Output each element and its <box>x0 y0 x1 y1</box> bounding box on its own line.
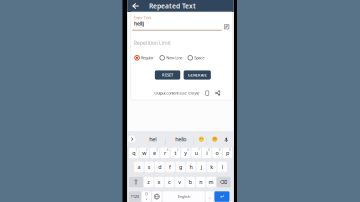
button[interactable]: . <box>206 191 214 202</box>
button[interactable]: o <box>212 148 222 158</box>
button[interactable]: Comma <box>142 191 151 202</box>
staticText: 5 <box>177 148 179 152</box>
staticText: 9 <box>219 148 221 152</box>
button[interactable]: ?123 <box>129 191 141 202</box>
button[interactable]: GENERATE <box>184 70 211 80</box>
button[interactable]: Emoji suggestion <box>197 131 206 147</box>
button[interactable]: ⌫ <box>217 177 231 187</box>
staticText: 7 <box>198 148 200 152</box>
staticText: hel <box>149 136 156 143</box>
button[interactable]: hel <box>142 131 164 147</box>
staticText: m <box>209 178 214 186</box>
staticText: j <box>201 163 202 170</box>
button[interactable]: Paste <box>224 24 229 29</box>
staticText: x <box>157 178 160 186</box>
staticText: ⌫ <box>220 179 228 185</box>
staticText: RESET <box>162 72 173 78</box>
staticText: ?123 <box>131 194 139 199</box>
staticText: r <box>164 149 166 156</box>
staticText: 0 <box>229 148 231 152</box>
button[interactable]: e <box>150 148 159 158</box>
button[interactable]: Regular <box>134 54 154 61</box>
staticText: e <box>153 149 156 156</box>
button[interactable]: f <box>165 162 175 172</box>
staticText: v <box>178 178 181 186</box>
button[interactable]: RESET <box>155 70 180 80</box>
button[interactable]: English <box>162 191 205 202</box>
staticText: y <box>184 149 187 156</box>
staticText: h <box>189 163 192 170</box>
button[interactable]: hello <box>169 131 193 147</box>
button[interactable]: q <box>129 148 139 158</box>
staticText: 6 <box>187 148 189 152</box>
button[interactable]: s <box>144 162 154 172</box>
button[interactable]: d <box>155 162 164 172</box>
staticText: GENERATE <box>188 72 207 78</box>
staticText: l <box>222 163 223 170</box>
staticText: , <box>146 194 147 201</box>
staticText: c <box>168 178 171 186</box>
button[interactable]: Change keyboard language <box>152 191 162 202</box>
button[interactable]: New Line <box>159 54 182 61</box>
button[interactable]: ↵ <box>214 191 229 202</box>
staticText: ⇧ <box>133 178 139 186</box>
button[interactable]: Voice input <box>222 131 231 147</box>
staticText: w <box>142 149 146 156</box>
button[interactable]: n <box>196 177 205 187</box>
button[interactable]: Back <box>127 0 144 12</box>
button[interactable]: u <box>191 148 201 158</box>
button[interactable]: Copy <box>205 90 209 96</box>
button[interactable]: t <box>171 148 180 158</box>
staticText: b <box>189 178 192 186</box>
staticText: u <box>195 149 198 156</box>
button[interactable]: z <box>144 177 153 187</box>
button[interactable]: i <box>202 148 211 158</box>
button[interactable]: k <box>207 162 217 172</box>
staticText: Enter Text <box>134 15 151 20</box>
button[interactable]: m <box>206 177 216 187</box>
staticText: 1 <box>135 148 137 152</box>
button[interactable]: j <box>197 162 206 172</box>
button[interactable]: b <box>185 177 195 187</box>
button[interactable]: x <box>154 177 164 187</box>
button[interactable]: y <box>181 148 191 158</box>
staticText: New Line <box>166 55 182 60</box>
staticText: hello <box>175 136 186 143</box>
button[interactable]: a <box>134 162 144 172</box>
button[interactable]: Share <box>215 90 220 96</box>
staticText: 3 <box>156 148 158 152</box>
staticText: f <box>169 163 171 170</box>
button[interactable]: Expand suggestions <box>127 131 136 147</box>
button[interactable]: v <box>175 177 185 187</box>
button[interactable]: Space <box>187 54 204 61</box>
staticText: Regular <box>141 55 154 60</box>
staticText: Space <box>194 55 204 60</box>
staticText: i <box>206 149 207 156</box>
staticText: o <box>216 149 219 156</box>
staticText: . <box>209 193 210 200</box>
staticText: 4 <box>167 148 169 152</box>
staticText: 8 <box>208 148 210 152</box>
staticText: n <box>199 178 202 186</box>
staticText: g <box>179 163 182 170</box>
button[interactable]: h <box>186 162 196 172</box>
button[interactable]: r <box>160 148 170 158</box>
staticText: Output content size: 0 Byte <box>154 90 199 96</box>
button[interactable]: Emoji suggestion <box>210 131 219 147</box>
staticText: Repetition Limit <box>134 39 171 46</box>
button[interactable]: ⇧ <box>129 177 143 187</box>
button[interactable]: g <box>176 162 185 172</box>
staticText: ↵ <box>220 193 224 200</box>
button[interactable]: p <box>223 148 232 158</box>
staticText: z <box>147 178 150 186</box>
button[interactable]: w <box>139 148 149 158</box>
button[interactable]: l <box>217 162 227 172</box>
staticText: t <box>174 149 176 156</box>
staticText: 2 <box>146 148 148 152</box>
staticText: Repeated Text <box>149 2 196 10</box>
staticText: p <box>226 149 229 156</box>
staticText: s <box>148 163 151 170</box>
button[interactable]: c <box>165 177 174 187</box>
staticText: hell <box>134 20 142 27</box>
staticText: a <box>137 163 140 170</box>
